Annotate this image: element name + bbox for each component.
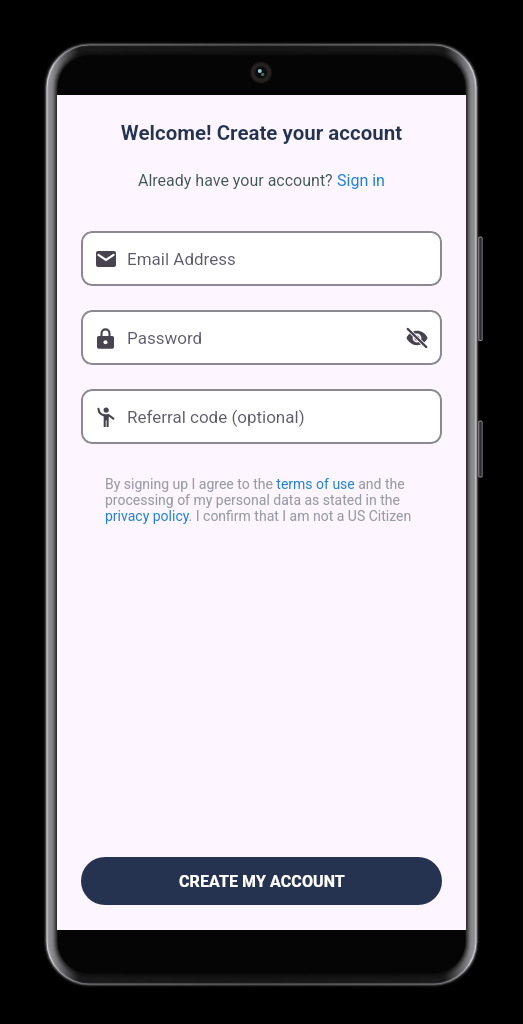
staticText: Already have your account? [138,171,337,190]
button[interactable]: Referral code (optional) [81,389,442,444]
staticText: CREATE MY ACCOUNT [179,872,345,891]
staticText: Referral code (optional) [127,407,305,427]
button[interactable]: Sign in [337,171,385,190]
staticText: Email Address [127,249,236,269]
button[interactable]: CREATE MY ACCOUNT [81,857,442,905]
button[interactable]: terms of use [276,476,352,492]
staticText: Welcome! Create your account [57,121,466,145]
staticText: Password [127,328,203,348]
button[interactable]: Show password [404,325,430,351]
button[interactable]: privacy policy [104,508,188,524]
staticText: By signing up I agree to the terms of us… [105,476,420,524]
button[interactable]: Password [81,310,442,365]
button[interactable]: Email Address [81,231,442,286]
staticText: Sign in [337,171,385,190]
